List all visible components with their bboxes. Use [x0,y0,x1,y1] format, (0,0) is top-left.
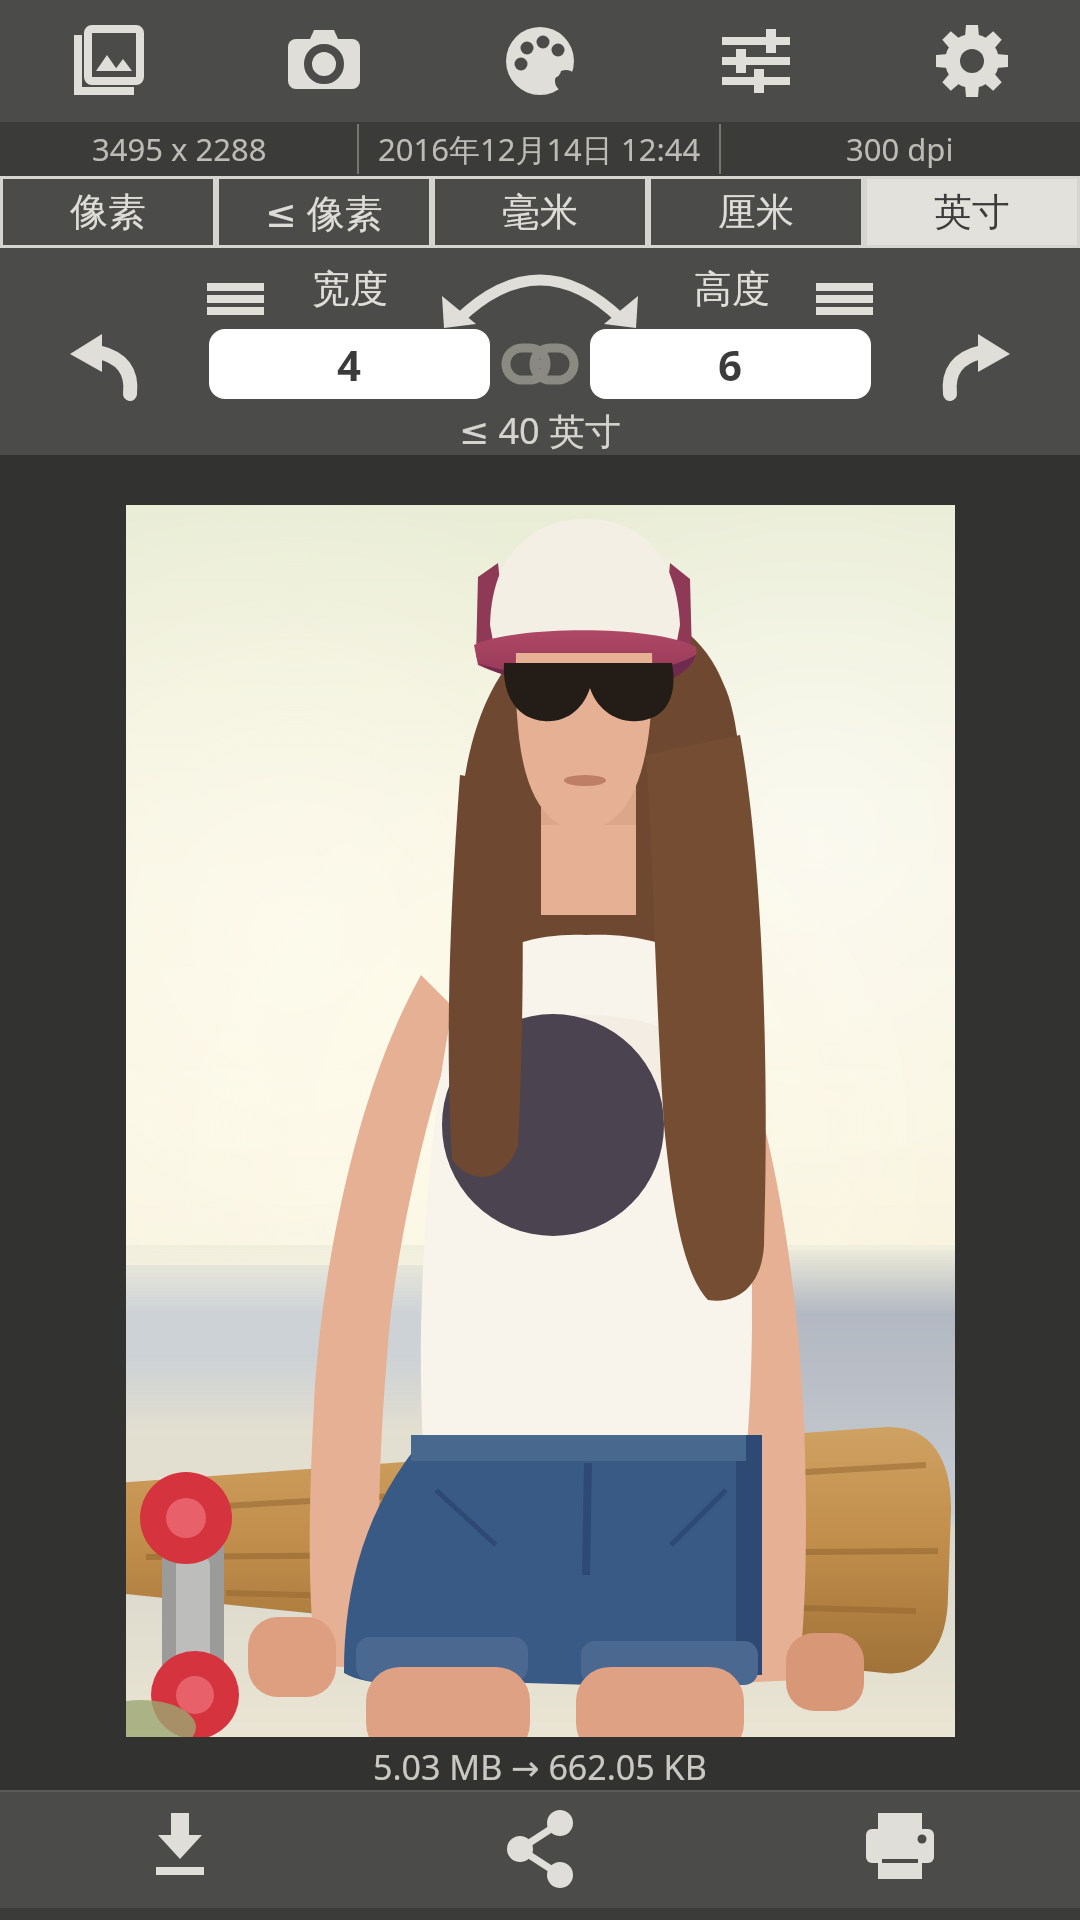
staticText: 300 dpi [846,128,954,170]
button[interactable] [864,0,1080,122]
staticText: ≤ 像素 [265,186,383,238]
button[interactable]: 厘米 [651,179,861,245]
button[interactable]: 英寸 [867,179,1077,245]
button[interactable]: 像素 [3,179,213,245]
button[interactable]: 4 [209,329,490,399]
staticText: 像素 [70,188,146,236]
button[interactable] [0,1790,360,1908]
staticText: 5.03 MB → 662.05 KB [373,1744,707,1788]
button[interactable] [216,0,432,122]
staticText: 毫米 [502,188,578,236]
button[interactable] [940,330,1012,402]
button[interactable] [68,330,140,402]
button[interactable]: 3495 x 2288 [0,122,358,176]
button[interactable] [432,0,648,122]
staticText: 英寸 [934,188,1010,236]
button[interactable] [0,0,216,122]
button[interactable] [648,0,864,122]
button[interactable] [504,344,576,384]
button[interactable] [816,283,873,315]
button[interactable]: ≤ 像素 [219,179,429,245]
staticText: 6 [718,336,743,393]
button[interactable] [360,1790,720,1908]
staticText: 3495 x 2288 [92,128,267,170]
staticText: 4 [337,336,362,393]
button[interactable]: 宽度 [300,264,400,314]
button[interactable]: 2016年12月14日 12:44 [358,122,720,176]
staticText: 厘米 [718,188,794,236]
staticText: ≤ 40 英寸 [459,406,622,450]
staticText: 宽度 [312,265,388,313]
button[interactable]: 6 [590,329,871,399]
button[interactable]: 300 dpi [720,122,1080,176]
staticText: 高度 [694,265,770,313]
button[interactable] [207,283,264,315]
staticText: 2016年12月14日 12:44 [378,128,701,170]
button[interactable]: 毫米 [435,179,645,245]
button[interactable] [720,1790,1080,1908]
button[interactable]: 高度 [682,264,782,314]
